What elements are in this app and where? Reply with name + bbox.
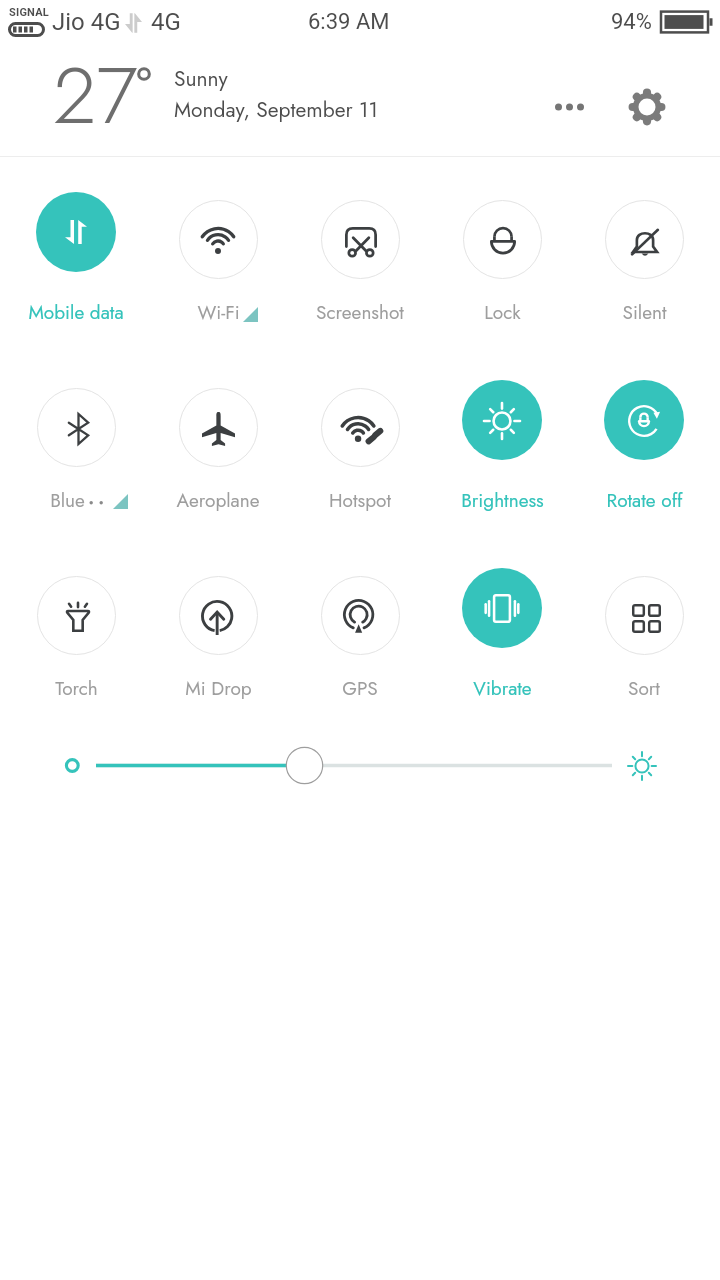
staticText: 6:39 AM (308, 9, 390, 35)
staticText: Jio 4G (52, 8, 121, 36)
button[interactable]: Brightness slider (0, 720, 720, 810)
button[interactable]: More options (554, 91, 585, 122)
staticText: Sunny (174, 64, 228, 94)
staticText: 4G (151, 8, 181, 36)
button[interactable]: Hotspot (289, 380, 431, 514)
staticText: Rotate off (606, 487, 683, 514)
staticText: Torch (55, 675, 98, 702)
staticText: Monday, September 11 (174, 95, 378, 125)
button[interactable]: Rotate off (573, 380, 715, 514)
staticText: Brightness (461, 487, 544, 514)
staticText: Vibrate (473, 675, 532, 702)
staticText: Silent (622, 299, 667, 326)
staticText: Lock (484, 299, 521, 326)
button[interactable]: Lock (431, 192, 573, 326)
staticText: SIGNAL (9, 6, 49, 19)
button[interactable]: Aeroplane (147, 380, 289, 514)
button[interactable]: Settings (614, 74, 679, 139)
button[interactable]: Torch (5, 568, 147, 702)
button[interactable]: Mi Drop (147, 568, 289, 702)
button[interactable]: Blue (5, 380, 147, 514)
button[interactable]: Vibrate (431, 568, 573, 702)
button[interactable]: Wi-Fi (147, 192, 289, 326)
staticText: Aeroplane (176, 487, 260, 514)
staticText: GPS (342, 675, 378, 702)
button[interactable]: Sort (573, 568, 715, 702)
staticText: Blue (50, 487, 85, 514)
button[interactable]: Brightness (431, 380, 573, 514)
staticText: 94% (611, 9, 652, 35)
staticText: Sort (628, 675, 660, 702)
button[interactable]: Silent (573, 192, 715, 326)
staticText: Mobile data (28, 299, 124, 326)
staticText: Mi Drop (185, 675, 252, 702)
button[interactable]: GPS (289, 568, 431, 702)
button[interactable]: Mobile data (5, 192, 147, 326)
button[interactable]: Screenshot (289, 192, 431, 326)
staticText: Hotspot (329, 487, 391, 514)
staticText: Wi-Fi (197, 299, 240, 326)
staticText: Screenshot (316, 299, 404, 326)
staticText: 27 (53, 38, 138, 150)
